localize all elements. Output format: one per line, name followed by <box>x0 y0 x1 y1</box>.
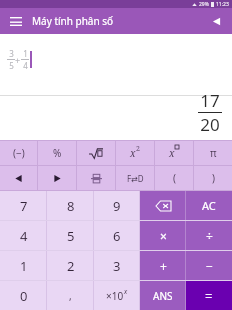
staticText: x <box>124 287 128 296</box>
button[interactable]: Back <box>206 11 226 31</box>
staticText: 2 <box>67 257 75 275</box>
staticText: ÷ <box>206 228 213 244</box>
button[interactable]: , <box>47 281 94 310</box>
staticText: 5 <box>9 60 14 71</box>
staticText: 17 <box>200 89 220 112</box>
staticText: % <box>53 146 62 160</box>
staticText: 3 <box>113 257 121 275</box>
button[interactable]: 6 <box>94 221 140 250</box>
staticText: , <box>69 289 72 303</box>
button[interactable]: Move right <box>38 166 76 190</box>
staticText: 4 <box>20 227 28 245</box>
staticText: ( <box>173 171 176 185</box>
button[interactable]: ANS <box>140 281 186 310</box>
button[interactable]: x squared <box>116 141 154 165</box>
staticText: 11:23 <box>216 1 229 8</box>
button[interactable]: ) <box>194 166 232 190</box>
staticText: + <box>15 54 21 66</box>
button[interactable]: 7 <box>0 191 47 220</box>
staticText: x <box>130 146 136 160</box>
button[interactable]: − <box>186 251 232 280</box>
button[interactable]: 1 <box>0 251 47 280</box>
staticText: ) <box>212 171 215 185</box>
staticText: Máy tính phân số <box>32 14 114 28</box>
button[interactable]: % <box>38 141 76 165</box>
button[interactable]: 9 <box>94 191 140 220</box>
staticText: = <box>205 287 213 305</box>
staticText: 0 <box>20 287 28 305</box>
staticText: 29% <box>199 1 209 8</box>
button[interactable]: (−) <box>0 141 37 165</box>
button[interactable]: + <box>140 251 186 280</box>
button[interactable]: F⇄D <box>116 166 154 190</box>
button[interactable]: Delete <box>140 191 186 220</box>
button[interactable]: ( <box>155 166 193 190</box>
button[interactable]: Square root <box>77 141 115 165</box>
staticText: AC <box>202 198 216 213</box>
staticText: ×10 <box>106 289 124 303</box>
button[interactable]: 5 <box>47 221 94 250</box>
staticText: + <box>160 258 167 274</box>
staticText: π <box>210 146 217 160</box>
button[interactable]: Fraction <box>77 166 115 190</box>
staticText: (−) <box>13 146 25 160</box>
button[interactable]: 3 <box>94 251 140 280</box>
staticText: 1 <box>23 48 28 59</box>
staticText: − <box>206 258 213 274</box>
staticText: 3 <box>9 48 14 59</box>
staticText: x <box>169 146 175 160</box>
button[interactable]: Open navigation menu <box>6 11 26 31</box>
staticText: × <box>160 228 167 244</box>
staticText: 1 <box>20 257 28 275</box>
staticText: 8 <box>67 197 75 215</box>
button[interactable]: x to the power <box>155 141 193 165</box>
button[interactable]: × <box>140 221 186 250</box>
button[interactable]: Times ten to the power of x <box>94 281 140 310</box>
button[interactable]: ÷ <box>186 221 232 250</box>
button[interactable]: AC <box>186 191 232 220</box>
button[interactable]: 8 <box>47 191 94 220</box>
button[interactable]: = <box>186 281 232 310</box>
button[interactable]: 0 <box>0 281 47 310</box>
staticText: 20 <box>200 113 220 136</box>
staticText: 5 <box>67 227 75 245</box>
staticText: F⇄D <box>127 173 144 184</box>
button[interactable]: 4 <box>0 221 47 250</box>
staticText: 6 <box>113 227 121 245</box>
staticText: 4 <box>23 60 28 71</box>
staticText: 2 <box>136 144 140 154</box>
staticText: ANS <box>153 289 173 303</box>
staticText: 7 <box>20 197 28 215</box>
staticText: 9 <box>113 197 121 215</box>
button[interactable]: π <box>194 141 232 165</box>
button[interactable]: Move left <box>0 166 37 190</box>
button[interactable]: 2 <box>47 251 94 280</box>
